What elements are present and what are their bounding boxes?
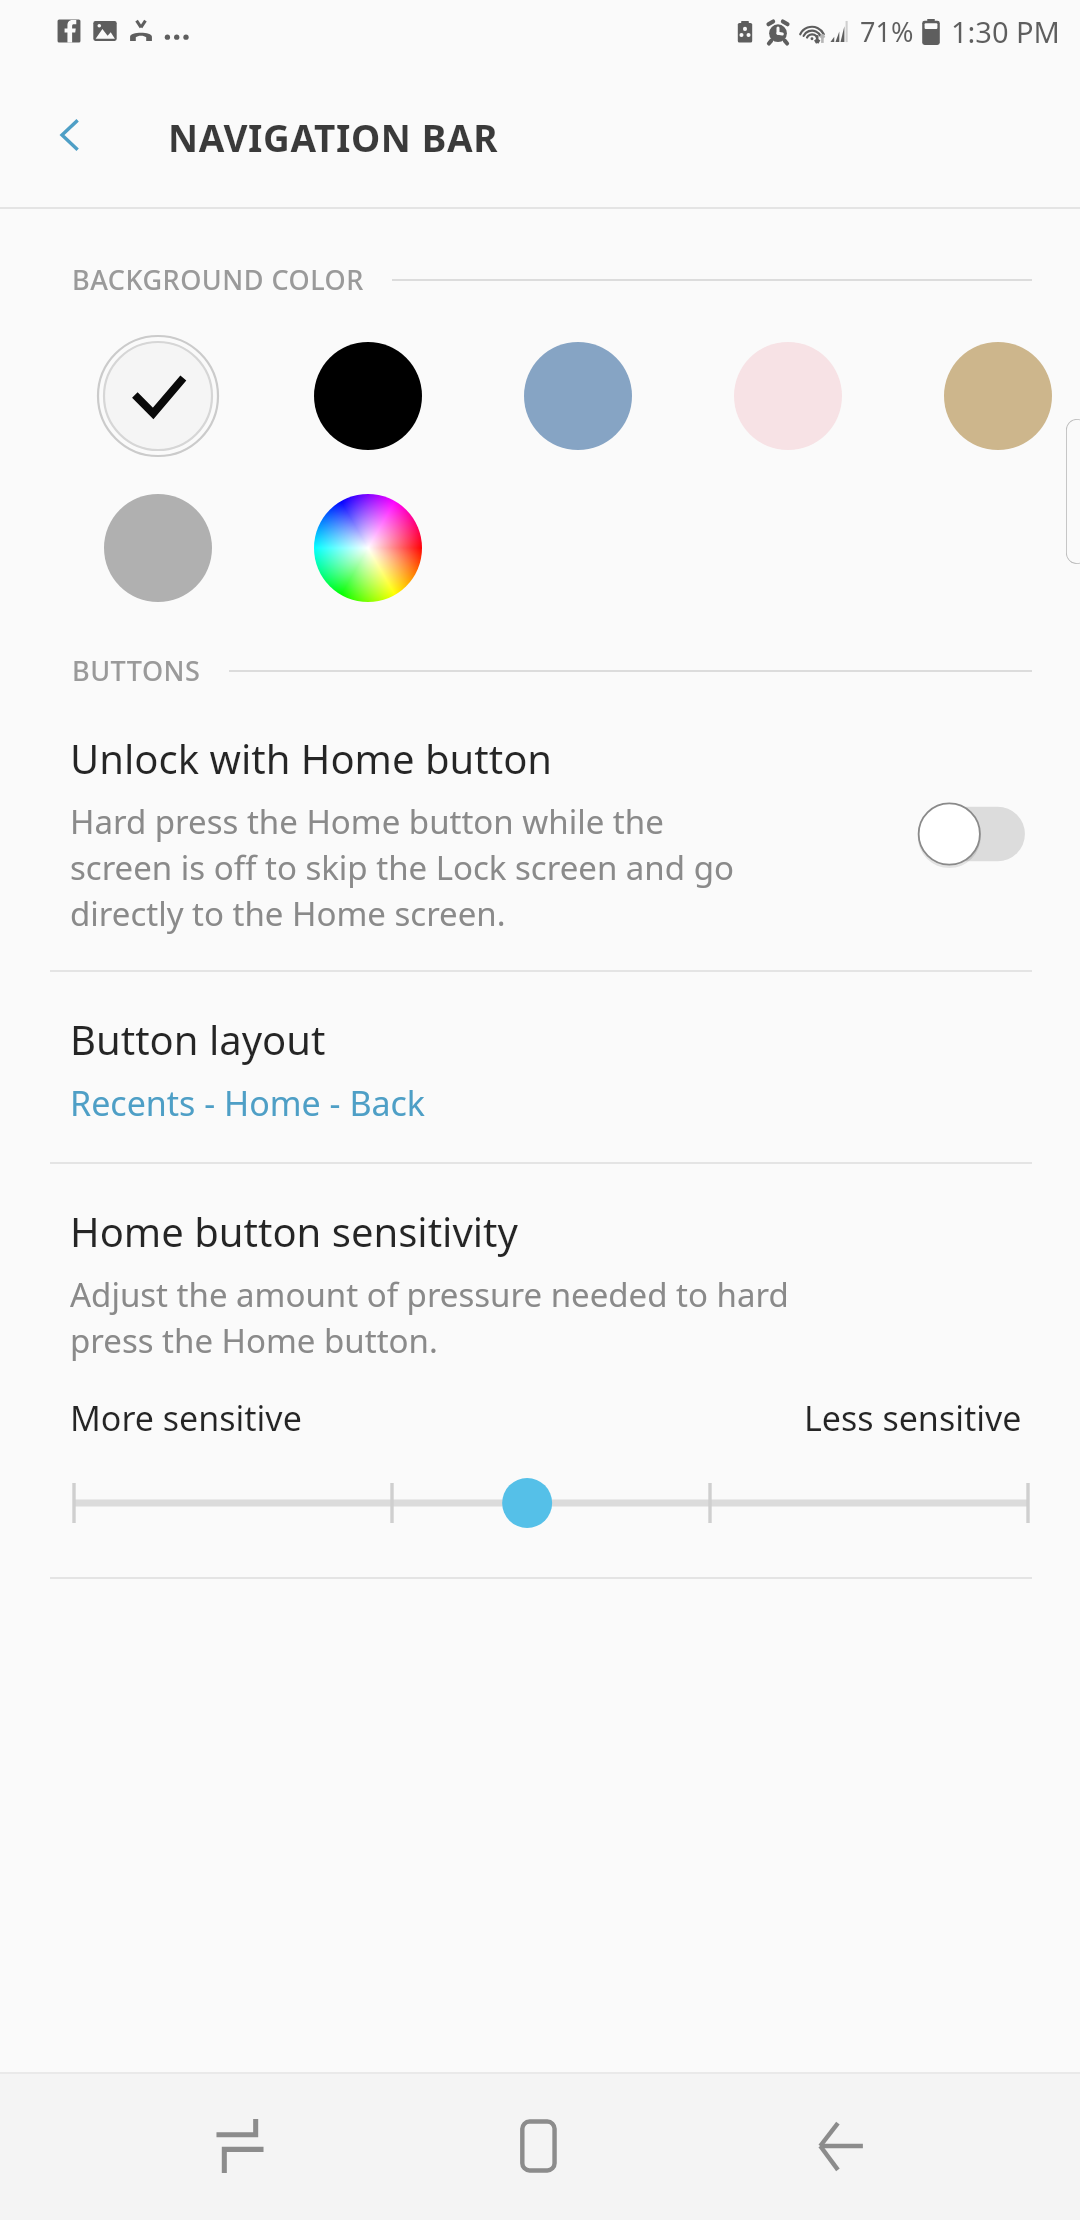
staticText: NAVIGATION BAR [168, 112, 499, 162]
staticText: BUTTONS [72, 652, 201, 689]
staticText: Less sensitive [804, 1395, 1022, 1441]
button[interactable]: Color option [308, 336, 428, 456]
button[interactable]: Color option [518, 336, 638, 456]
button[interactable]: Back [780, 2086, 900, 2206]
button[interactable]: Color option [98, 488, 218, 608]
button[interactable]: Color option [98, 336, 218, 456]
button[interactable]: Home button sensitivity slider [70, 1463, 1032, 1543]
button[interactable]: Home [480, 2086, 600, 2206]
button[interactable]: Unlock with Home button [0, 689, 1080, 970]
staticText: 1:30 PM [951, 12, 1060, 51]
button[interactable]: Back [40, 105, 100, 165]
staticText: Adjust the amount of pressure needed to … [70, 1272, 789, 1363]
staticText: Hard press the Home button while the scr… [70, 799, 734, 936]
staticText: Home button sensitivity [70, 1204, 518, 1258]
button[interactable]: Color option [728, 336, 848, 456]
staticText: Unlock with Home button [70, 731, 553, 785]
staticText: Recents - Home - Back [70, 1080, 426, 1126]
button[interactable]: Recents [180, 2086, 300, 2206]
staticText: BACKGROUND COLOR [72, 261, 364, 298]
staticText: Button layout [70, 1012, 326, 1066]
button[interactable]: Button layout [0, 972, 1080, 1162]
button[interactable]: Unlock with Home button toggle [914, 796, 1032, 872]
button[interactable]: Custom color [308, 488, 428, 608]
staticText: More sensitive [70, 1395, 302, 1441]
button[interactable]: Color option [938, 336, 1058, 456]
staticText: 71% [860, 13, 914, 50]
